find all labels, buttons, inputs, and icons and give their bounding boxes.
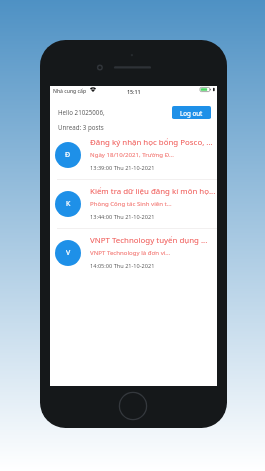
staticText: Phòng Công tác Sinh viên t... — [90, 199, 218, 207]
staticText: Đăng ký nhận học bổng Posco, ... — [90, 137, 218, 148]
button[interactable]: V — [50, 229, 217, 277]
staticText: 13:39:00 Thu 21-10-2021 — [90, 164, 218, 172]
staticText: Ngày 18/10/2021, Trường Đ... — [90, 150, 218, 158]
staticText: 13:44:00 Thu 21-10-2021 — [90, 213, 218, 221]
button[interactable]: Log out — [172, 106, 211, 119]
staticText: K — [66, 199, 71, 209]
staticText: VNPT Technology tuyển dụng ... — [90, 235, 218, 246]
staticText: Nhà cung cấp — [53, 88, 87, 95]
button[interactable]: K — [50, 180, 217, 228]
staticText: 15:11 — [127, 88, 141, 95]
staticText: Đ — [65, 150, 71, 160]
staticText: V — [66, 248, 71, 258]
staticText: VNPT Technology là đơn vi... — [90, 248, 218, 256]
staticText: Hello 21025006, — [58, 108, 105, 116]
staticText: 14:05:00 Thu 21-10-2021 — [90, 262, 218, 270]
button[interactable]: Đ — [50, 131, 217, 179]
staticText: Unread: 3 posts — [58, 123, 104, 131]
staticText: Kiểm tra dữ liệu đăng kí môn họ... — [90, 186, 218, 197]
staticText: Log out — [180, 109, 203, 117]
